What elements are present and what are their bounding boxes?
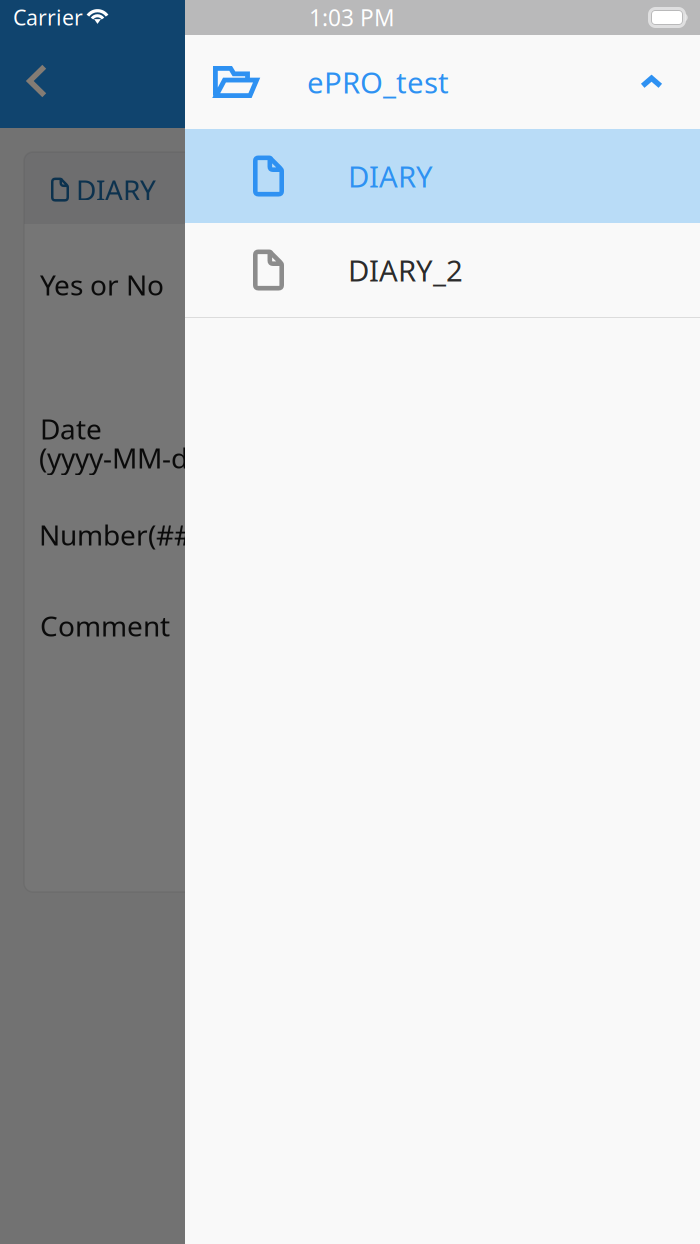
button[interactable]: DIARY [185, 129, 700, 223]
staticText: Yes or No [40, 266, 164, 303]
staticText: ePRO_test [307, 62, 449, 101]
staticText: (yyyy-MM-dd) [39, 439, 213, 476]
staticText: 1:03 PM [309, 2, 395, 32]
staticText: Comment [40, 607, 170, 644]
staticText: DIARY [348, 156, 433, 195]
staticText: Number(###) [39, 516, 218, 553]
button[interactable]: DIARY_2 [185, 223, 700, 317]
staticText: Date [40, 410, 102, 447]
button[interactable]: ePRO_test [185, 35, 700, 129]
staticText: DIARY_2 [348, 250, 463, 289]
staticText: DIARY [76, 171, 156, 208]
staticText: Carrier [13, 3, 83, 31]
button[interactable]: Back [5, 49, 69, 113]
